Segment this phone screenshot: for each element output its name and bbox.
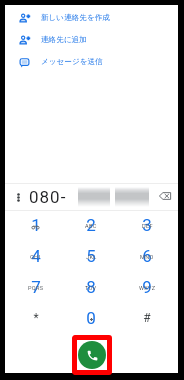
button[interactable]: 3	[119, 211, 175, 242]
staticText: 8	[86, 277, 96, 297]
staticText: 新しい連絡先を作成	[41, 13, 110, 23]
button[interactable]: 6	[119, 242, 175, 273]
button[interactable]: 4	[8, 242, 63, 273]
staticText: 4	[31, 246, 41, 266]
staticText: TUV	[85, 285, 97, 292]
staticText: 連絡先に追加	[41, 35, 87, 45]
button[interactable]: 7	[8, 273, 63, 304]
staticText: 1	[31, 215, 41, 235]
button[interactable]: 0	[63, 304, 119, 335]
staticText: #	[143, 311, 151, 325]
staticText: メッセージを送信	[41, 57, 103, 67]
staticText: GHI	[30, 254, 41, 261]
button[interactable]: 新しい連絡先を作成	[5, 7, 178, 29]
button[interactable]: 1	[8, 211, 63, 242]
staticText: *	[33, 311, 39, 325]
staticText: 7	[31, 277, 41, 297]
staticText: 080-	[29, 187, 67, 207]
button[interactable]: Backspace	[156, 187, 174, 205]
button[interactable]: *	[8, 304, 63, 335]
button[interactable]: Call	[78, 341, 106, 369]
button[interactable]: 2	[63, 211, 119, 242]
button[interactable]: 連絡先に追加	[5, 29, 178, 51]
staticText: WXYZ	[139, 285, 156, 292]
button[interactable]: 9	[119, 273, 175, 304]
staticText: 5	[86, 246, 96, 266]
staticText: 3	[142, 215, 152, 235]
staticText: MNO	[140, 254, 154, 261]
staticText: 2	[86, 215, 96, 235]
button[interactable]: More options	[12, 191, 25, 204]
staticText: JKL	[86, 254, 97, 261]
staticText: ABC	[85, 223, 97, 230]
staticText: 9	[142, 277, 152, 297]
staticText: PQRS	[28, 285, 44, 292]
button[interactable]: 5	[63, 242, 119, 273]
staticText: 0	[86, 308, 96, 328]
staticText: 6	[142, 246, 152, 266]
button[interactable]: #	[119, 304, 175, 335]
staticText: DEF	[142, 223, 153, 230]
button[interactable]: 8	[63, 273, 119, 304]
button[interactable]: メッセージを送信	[5, 51, 178, 73]
